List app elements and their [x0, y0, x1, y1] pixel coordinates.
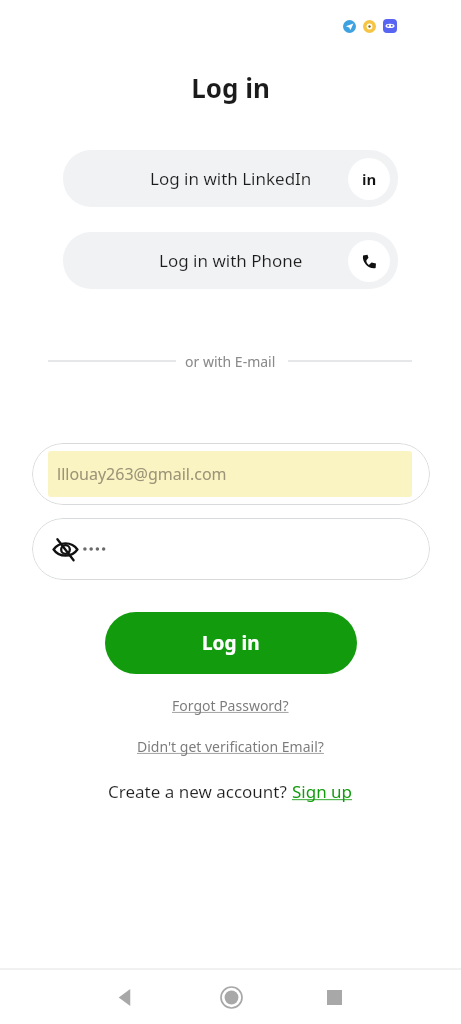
staticText: or with E-mail — [185, 352, 276, 371]
button[interactable]: Log in with Phone — [63, 232, 398, 289]
button[interactable]: Show password — [32, 518, 430, 580]
staticText: Log in — [202, 630, 260, 656]
staticText: Log in with Phone — [159, 249, 303, 272]
button[interactable]: Show password — [50, 534, 80, 564]
button[interactable]: Back — [103, 975, 147, 1019]
staticText: in — [362, 169, 377, 189]
staticText: Create a new account? — [108, 780, 292, 803]
staticText: Forgot Password? — [172, 696, 289, 715]
button[interactable]: Sign up — [292, 780, 353, 803]
button[interactable]: Home — [209, 975, 253, 1019]
button[interactable]: Forgot Password? — [168, 694, 293, 717]
button[interactable]: lllouay263@gmail.com — [32, 443, 430, 505]
staticText: Log in with LinkedIn — [150, 167, 312, 190]
button[interactable]: Log in — [105, 612, 357, 674]
staticText: Sign up — [292, 780, 353, 803]
staticText: Log in — [191, 70, 270, 105]
button[interactable]: Log in with LinkedIn — [63, 150, 398, 207]
button[interactable]: Didn't get verification Email? — [133, 735, 328, 758]
staticText: lllouay263@gmail.com — [57, 463, 227, 485]
button[interactable]: Recent apps — [312, 975, 356, 1019]
staticText: Didn't get verification Email? — [137, 737, 324, 756]
